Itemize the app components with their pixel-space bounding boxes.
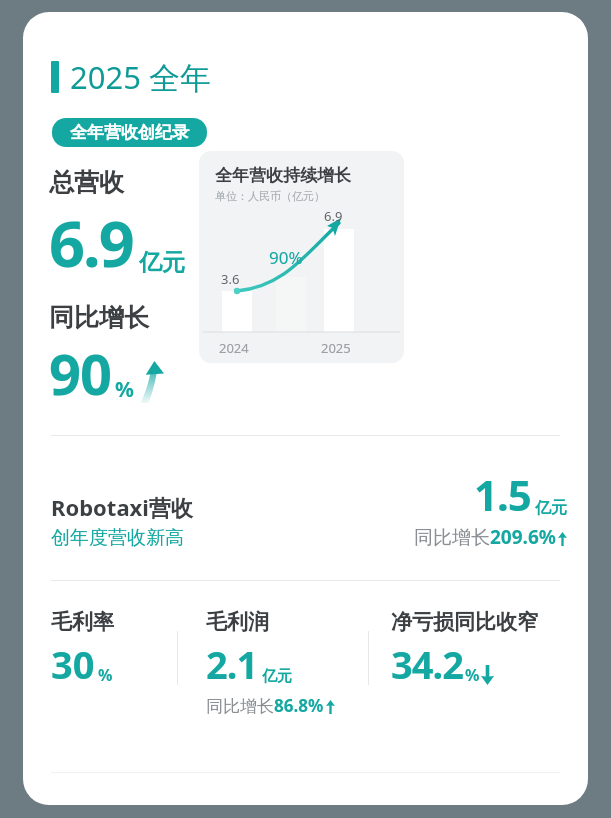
- staticText: %: [115, 375, 134, 404]
- staticText: 同比增长: [206, 696, 274, 717]
- staticText: 毛利润: [206, 609, 269, 635]
- staticText: %: [98, 664, 113, 686]
- staticText: 90%: [269, 246, 303, 269]
- staticText: 86.8%: [274, 694, 324, 717]
- staticText: %: [465, 664, 480, 686]
- staticText: 2025 全年: [70, 56, 211, 98]
- button[interactable]: 毛利率: [51, 609, 177, 690]
- staticText: 1.5: [474, 466, 531, 523]
- staticText: 3.6: [221, 270, 240, 288]
- staticText: 2024: [219, 339, 249, 357]
- staticText: 90: [49, 335, 112, 411]
- staticText: 30: [51, 638, 95, 690]
- staticText: 全年营收创纪录: [70, 122, 189, 143]
- staticText: 6.9: [324, 207, 343, 225]
- staticText: 创年度营收新高: [51, 526, 184, 550]
- other: Increase: [138, 361, 164, 403]
- staticText: 6.9: [49, 200, 133, 286]
- other: Down: [481, 665, 494, 685]
- button[interactable]: 净亏损同比收窄: [391, 609, 538, 690]
- staticText: 同比增长: [49, 302, 149, 333]
- other: Up: [326, 700, 335, 714]
- button[interactable]: 全年营收持续增长: [199, 151, 404, 363]
- staticText: Robotaxi营收: [51, 492, 193, 522]
- staticText: 单位：人民币（亿元）: [215, 189, 325, 203]
- staticText: 34.2: [391, 638, 463, 690]
- staticText: 净亏损同比收窄: [391, 609, 538, 635]
- staticText: 亿元: [262, 667, 292, 686]
- staticText: 亿元: [139, 248, 185, 277]
- staticText: 亿元: [535, 498, 567, 518]
- button[interactable]: Robotaxi营收: [51, 466, 567, 550]
- button[interactable]: 毛利润: [206, 609, 368, 717]
- staticText: 全年营收持续增长: [215, 165, 351, 186]
- staticText: 毛利率: [51, 609, 114, 635]
- button[interactable]: 全年营收创纪录: [52, 118, 207, 147]
- staticText: 2025: [321, 339, 351, 357]
- staticText: 同比增长: [414, 526, 490, 550]
- staticText: 2.1: [206, 638, 258, 690]
- button[interactable]: 2025 全年: [51, 56, 211, 98]
- staticText: 209.6%: [490, 524, 556, 550]
- other: Up: [558, 532, 567, 546]
- staticText: 总营收: [49, 167, 124, 198]
